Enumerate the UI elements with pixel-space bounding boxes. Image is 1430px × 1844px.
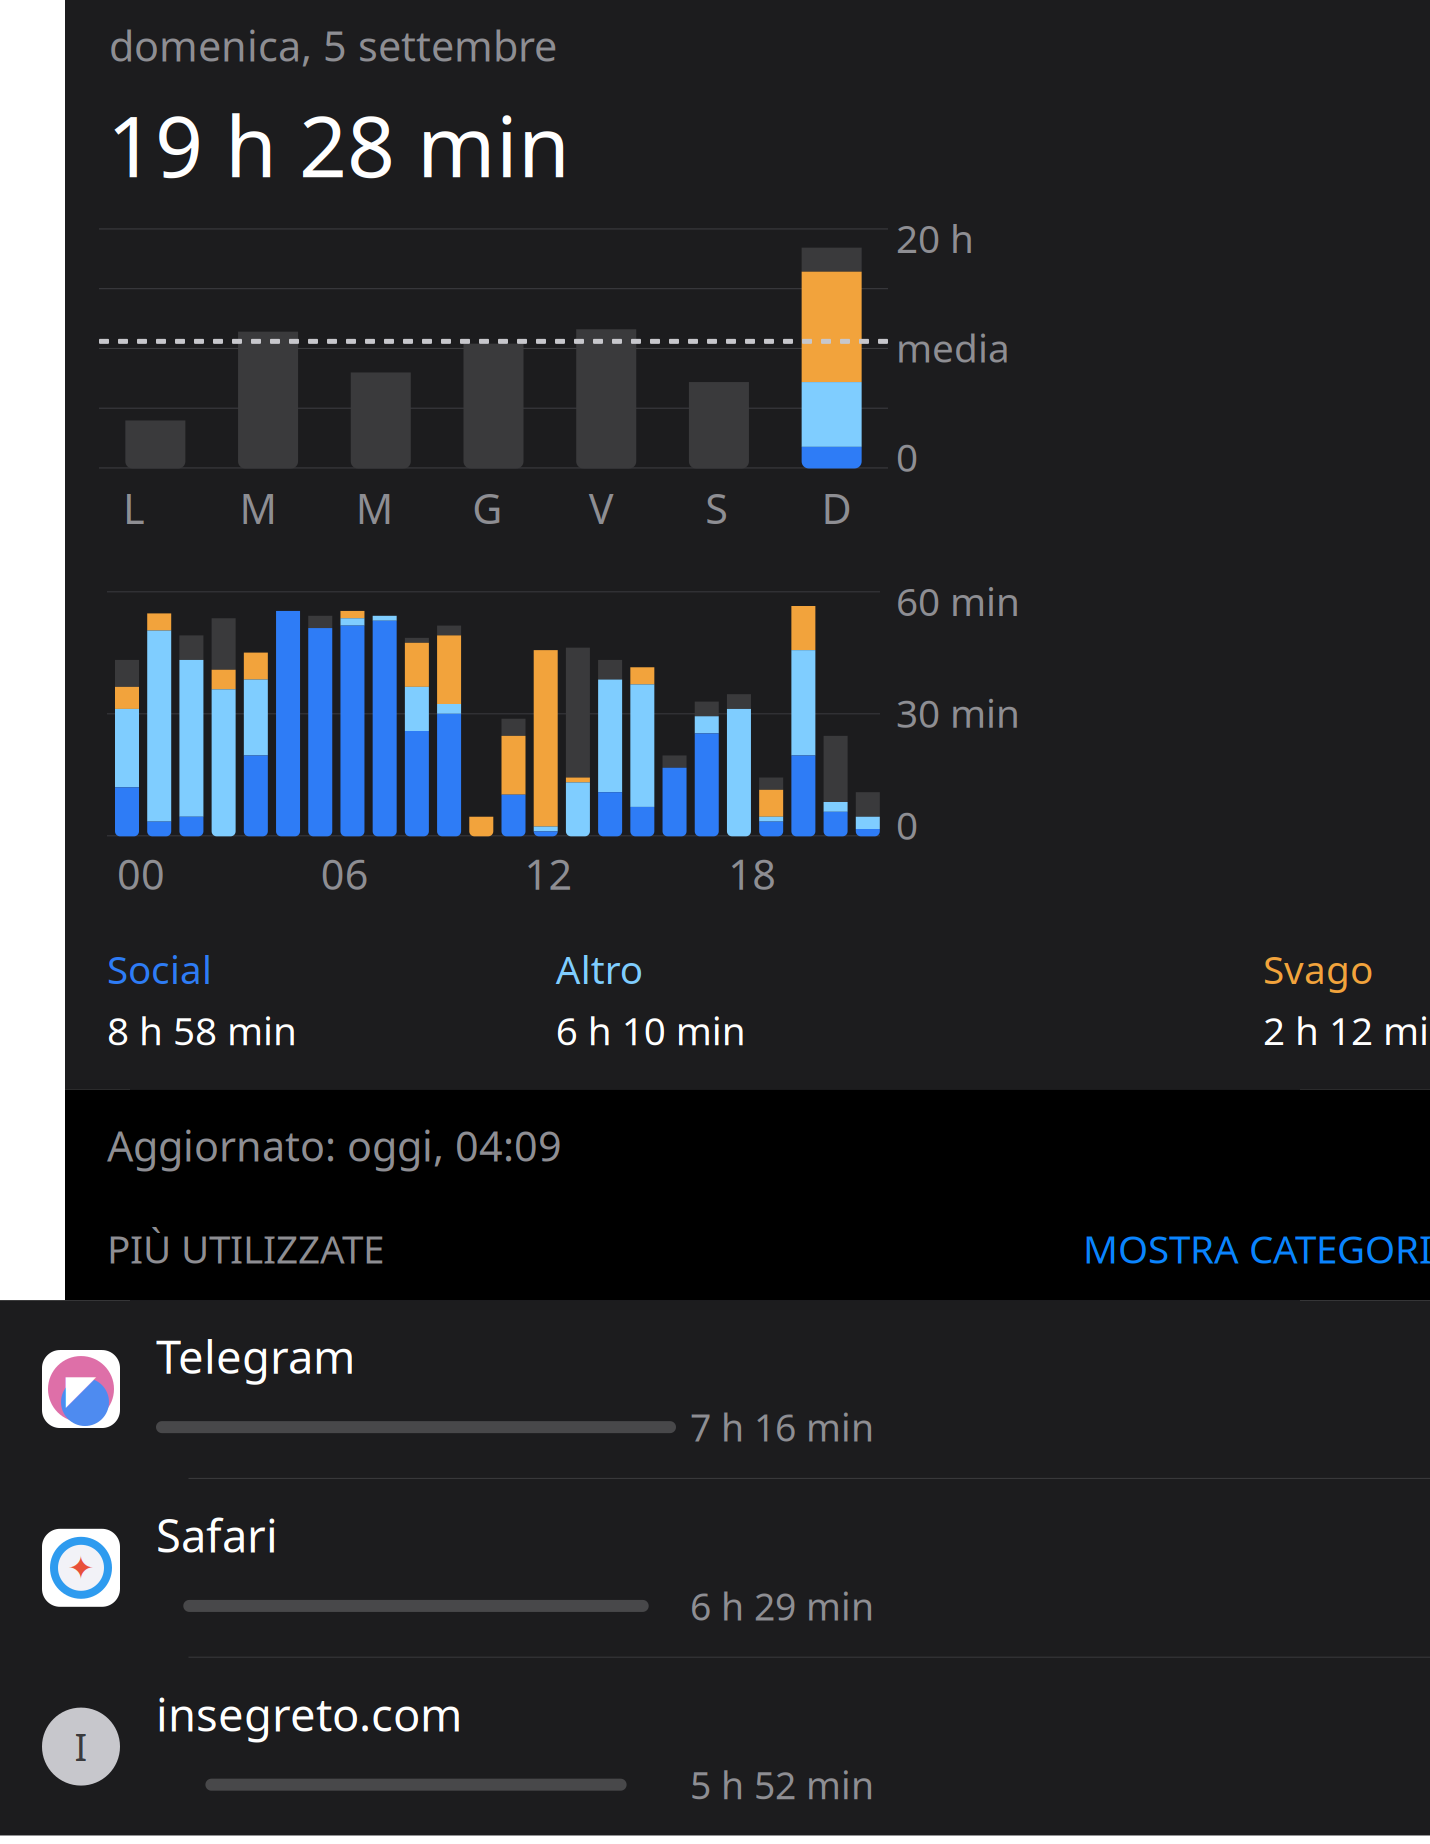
staticText: 0 [896, 799, 918, 850]
staticText: MOSTRA CATEGORIE [1083, 1223, 1430, 1274]
staticText: 8 h 58 min [107, 1005, 297, 1056]
staticText: 60 min [896, 575, 1020, 627]
staticText: V [589, 480, 614, 535]
staticText: 30 min [896, 687, 1020, 738]
staticText: ✦ [67, 1550, 94, 1586]
staticText: 00 [117, 846, 165, 901]
staticText: media [896, 322, 1010, 373]
staticText: S [705, 480, 728, 535]
staticText: 2 h 12 min [1263, 1005, 1430, 1056]
staticText: 6 h 10 min [556, 1005, 746, 1056]
staticText: Safari [156, 1505, 278, 1565]
staticText: domenica, 5 settembre [109, 18, 557, 73]
staticText: insegreto.com [156, 1684, 462, 1744]
staticText: Aggiornato: oggi, 04:09 [107, 1118, 562, 1173]
staticText: D [822, 480, 852, 535]
staticText: 18 [728, 846, 776, 901]
staticText: 06 [321, 846, 369, 901]
button[interactable]: MOSTRA CATEGORIE [1083, 1223, 1430, 1274]
staticText: L [123, 480, 145, 535]
staticText: G [472, 480, 502, 535]
button[interactable]: ◤ [0, 1300, 1430, 1478]
staticText: 7 h 16 min [690, 1402, 874, 1452]
button[interactable]: I [0, 1658, 1430, 1835]
staticText: ◤ [65, 1366, 96, 1412]
staticText: Altro [556, 943, 643, 994]
staticText: 19 h 28 min [107, 89, 570, 200]
staticText: 0 [896, 431, 918, 482]
staticText: 5 h 52 min [690, 1760, 874, 1809]
button[interactable]: ✦ [0, 1479, 1430, 1657]
staticText: I [74, 1722, 87, 1771]
staticText: Social [107, 943, 212, 994]
staticText: PIÙ UTILIZZATE [107, 1223, 384, 1274]
staticText: 12 [524, 846, 572, 901]
staticText: 6 h 29 min [690, 1581, 874, 1631]
staticText: Svago [1263, 943, 1373, 994]
staticText: 20 h [896, 212, 974, 264]
staticText: M [239, 480, 276, 535]
staticText: M [356, 480, 393, 535]
staticText: Telegram [156, 1326, 355, 1386]
